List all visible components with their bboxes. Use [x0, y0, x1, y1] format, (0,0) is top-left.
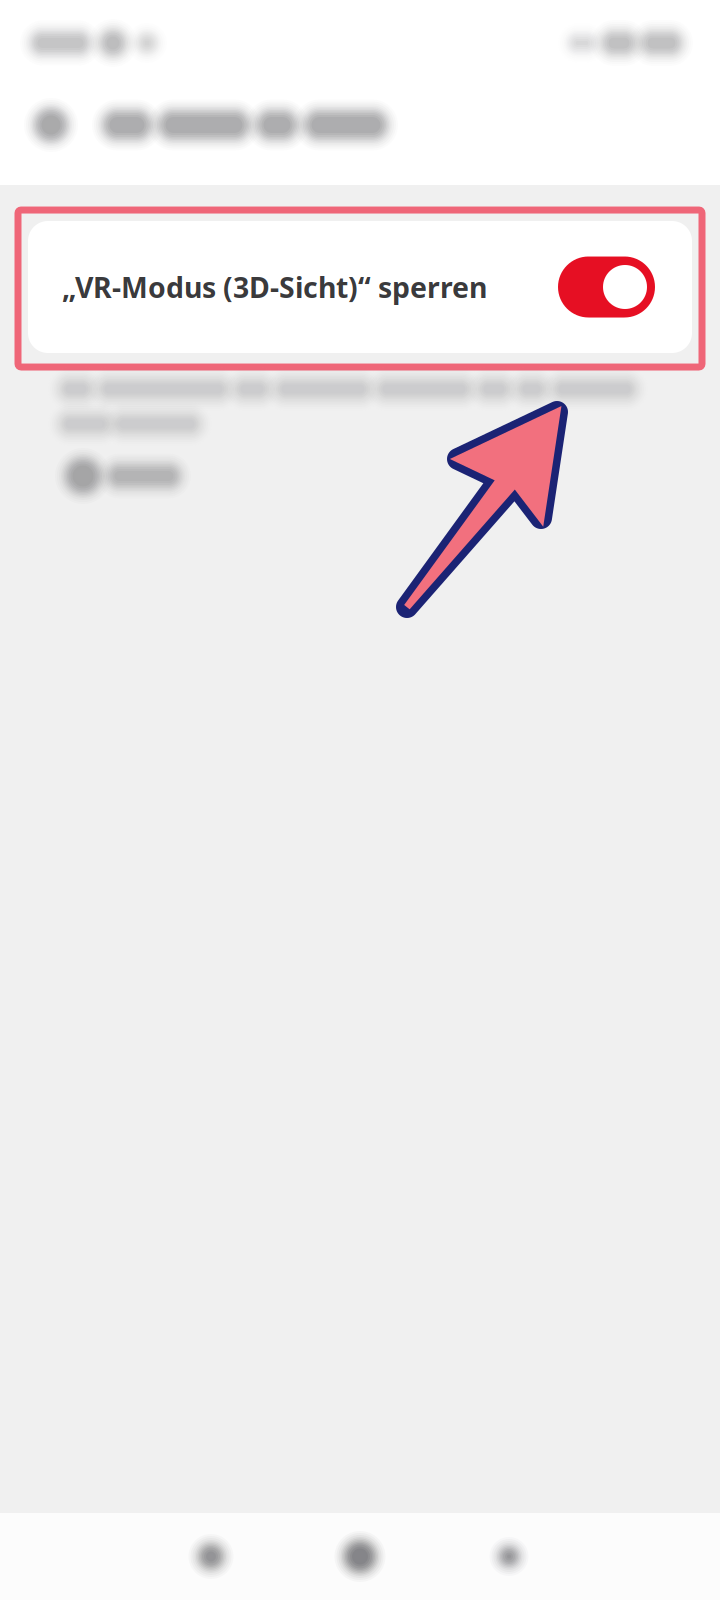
button[interactable]: „VR-Modus (3D-Sicht)“ sperren — [28, 221, 692, 353]
button[interactable]: Recent apps — [454, 1511, 564, 1600]
button[interactable]: Details — [62, 462, 177, 490]
button[interactable]: Home — [305, 1511, 415, 1600]
button[interactable]: Back — [156, 1511, 266, 1600]
button[interactable]: Back — [18, 90, 84, 160]
staticText: „VR-Modus (3D-Sicht)“ sperren — [62, 268, 487, 306]
